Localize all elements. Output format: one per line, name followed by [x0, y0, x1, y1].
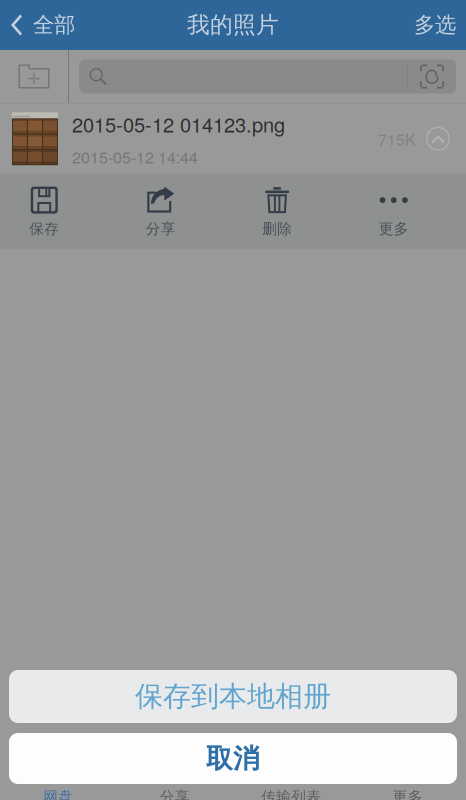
staticText: 保存到本地相册	[135, 679, 331, 714]
staticText: 保存	[29, 220, 59, 238]
button[interactable]: 删除	[233, 175, 349, 249]
button[interactable]: 多选	[398, 0, 466, 50]
button[interactable]: 全部	[0, 0, 83, 50]
staticText: 多选	[414, 12, 456, 38]
button[interactable]: 保存	[0, 175, 116, 249]
staticText: 全部	[33, 12, 75, 38]
staticText: 分享	[160, 787, 190, 800]
staticText: 更多	[379, 220, 409, 238]
staticText: 分享	[146, 220, 176, 238]
staticText: 2015-05-12 014123.png	[72, 109, 285, 138]
button[interactable]: 更多	[349, 762, 466, 800]
staticText: 取消	[206, 742, 260, 775]
button[interactable]: 网盘	[0, 762, 116, 800]
button[interactable]: New folder	[0, 50, 68, 103]
staticText: 传输列表	[261, 787, 321, 800]
staticText: 2015-05-12 14:44	[72, 145, 198, 168]
staticText: 更多	[393, 787, 423, 800]
button[interactable]: Scan	[408, 59, 456, 93]
staticText: 我的照片	[187, 11, 279, 39]
button[interactable]: 分享	[116, 175, 233, 249]
staticText: 删除	[262, 220, 292, 238]
button[interactable]: 传输列表	[233, 762, 349, 800]
staticText: 715K	[378, 127, 416, 150]
button[interactable]: 保存到本地相册	[9, 670, 457, 723]
button[interactable]: 分享	[116, 762, 233, 800]
button[interactable]: 取消	[9, 733, 457, 784]
staticText: 网盘	[43, 787, 73, 800]
button[interactable]: Collapse	[416, 113, 460, 165]
button[interactable]: 更多	[349, 175, 466, 249]
